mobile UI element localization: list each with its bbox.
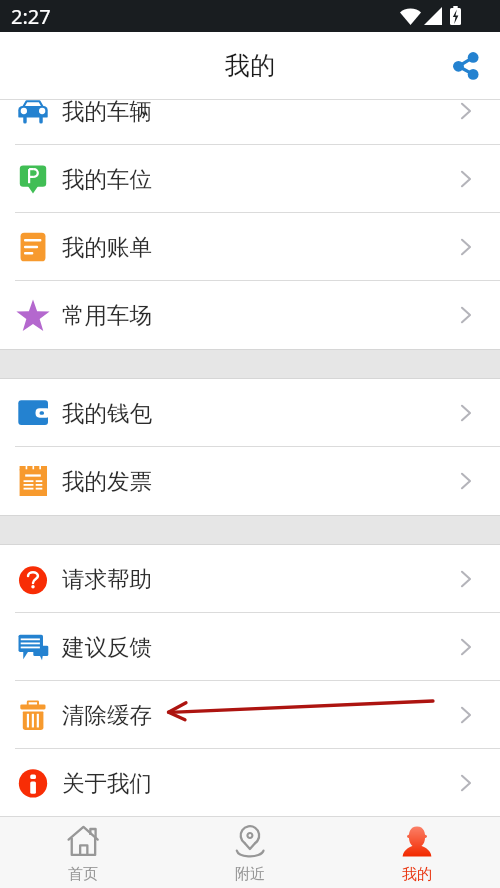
staticText: 常用车场	[62, 301, 152, 329]
button[interactable]: 我的钱包	[0, 379, 500, 447]
staticText: 我的账单	[62, 233, 152, 261]
button[interactable]: 关于我们	[0, 749, 500, 816]
staticText: 关于我们	[62, 769, 152, 797]
staticText: 我的	[225, 50, 275, 81]
button[interactable]: 建议反馈	[0, 613, 500, 681]
staticText: 我的发票	[62, 467, 152, 495]
staticText: 我的车位	[62, 165, 152, 193]
button[interactable]: 我的	[333, 817, 500, 888]
button[interactable]: 清除缓存	[0, 681, 500, 749]
button[interactable]: 我的车辆	[0, 100, 500, 145]
staticText: 请求帮助	[62, 565, 152, 593]
staticText: 附近	[235, 865, 265, 884]
staticText: 我的	[402, 865, 432, 884]
staticText: 我的车辆	[62, 100, 152, 125]
button[interactable]: 附近	[166, 817, 333, 888]
button[interactable]: 我的账单	[0, 213, 500, 281]
staticText: 建议反馈	[62, 633, 152, 661]
button[interactable]: 首页	[0, 817, 166, 888]
staticText: 2:27	[11, 3, 51, 30]
button[interactable]: 我的车位	[0, 145, 500, 213]
button[interactable]: 常用车场	[0, 281, 500, 349]
button[interactable]: 我的发票	[0, 447, 500, 515]
button[interactable]: 请求帮助	[0, 545, 500, 613]
staticText: 首页	[68, 865, 98, 884]
staticText: 我的钱包	[62, 399, 152, 427]
button[interactable]: Share	[443, 43, 489, 89]
staticText: 清除缓存	[62, 701, 152, 729]
